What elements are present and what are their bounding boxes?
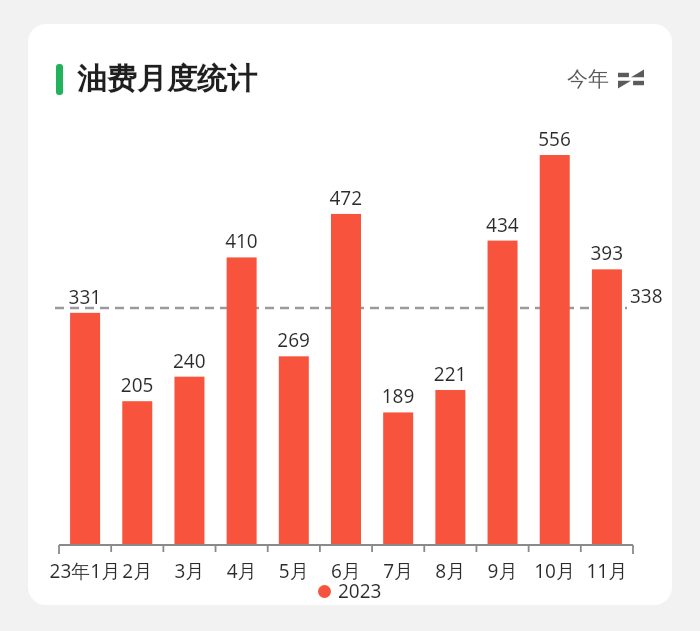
other: Sort: [618, 66, 644, 92]
button[interactable]: 今年: [565, 62, 646, 96]
staticText: 2023: [338, 578, 382, 604]
button[interactable]: 2023: [314, 576, 386, 605]
staticText: 今年: [567, 66, 609, 92]
staticText: 油费月度统计: [77, 60, 257, 98]
